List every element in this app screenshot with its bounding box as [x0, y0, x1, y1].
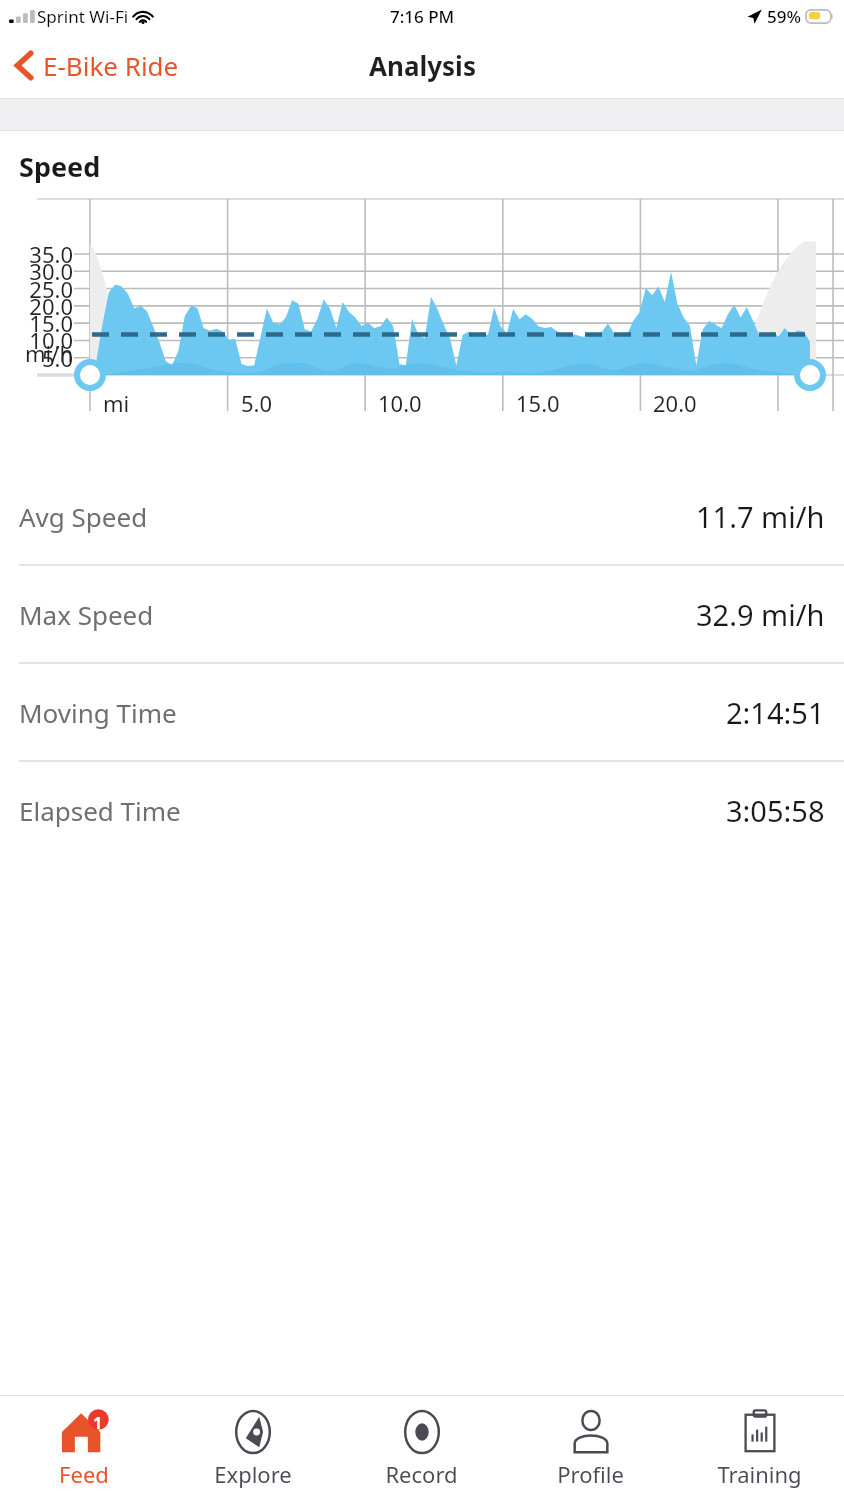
staticText: 1 [93, 1412, 103, 1434]
button[interactable]: Elapsed Time [0, 762, 844, 858]
other: Record [398, 1408, 446, 1456]
staticText: mi [103, 388, 130, 418]
staticText: Analysis [369, 48, 476, 83]
staticText: 5.0 [0, 343, 73, 373]
staticText: 15.0 [0, 308, 73, 338]
other: Feed [60, 1408, 108, 1456]
staticText: 20.0 [653, 388, 697, 418]
staticText: 5.0 [241, 388, 273, 418]
staticText: mi/h [0, 338, 73, 368]
staticText: E-Bike Ride [43, 48, 179, 83]
staticText: Explore [214, 1459, 292, 1489]
staticText: 59% [767, 5, 801, 28]
staticText: 25.0 [0, 274, 73, 304]
button[interactable]: Profile [506, 1396, 675, 1500]
button[interactable]: Feed [0, 1396, 168, 1500]
staticText: Feed [59, 1459, 109, 1489]
staticText: 35.0 [0, 239, 73, 269]
staticText: 20.0 [0, 291, 73, 321]
staticText: 7:16 PM [390, 5, 455, 28]
staticText: 30.0 [0, 256, 73, 286]
staticText: 11.7 mi/h [696, 497, 825, 536]
other: Profile [567, 1408, 615, 1456]
staticText: Avg Speed [19, 499, 148, 534]
other: Explore [229, 1408, 277, 1456]
button[interactable]: E-Bike Ride [0, 42, 193, 89]
staticText: Speed [19, 148, 101, 185]
staticText: 2:14:51 [726, 693, 825, 732]
staticText: 3:05:58 [726, 791, 825, 830]
other: Training [736, 1408, 784, 1456]
staticText: Moving Time [19, 695, 177, 730]
staticText: Max Speed [19, 597, 154, 632]
staticText: 15.0 [516, 388, 560, 418]
button[interactable]: Training [675, 1396, 844, 1500]
button[interactable]: Max Speed [0, 566, 844, 662]
button[interactable]: Record [337, 1396, 506, 1500]
staticText: Training [717, 1459, 802, 1489]
staticText: Sprint Wi-Fi [37, 5, 129, 28]
button[interactable]: Explore [168, 1396, 337, 1500]
staticText: Profile [557, 1459, 624, 1489]
staticText: Record [385, 1459, 458, 1489]
button[interactable]: Avg Speed [0, 468, 844, 564]
staticText: 10.0 [378, 388, 422, 418]
staticText: 32.9 mi/h [696, 595, 825, 634]
button[interactable]: Moving Time [0, 664, 844, 760]
staticText: Elapsed Time [19, 793, 181, 828]
staticText: 10.0 [0, 325, 73, 355]
